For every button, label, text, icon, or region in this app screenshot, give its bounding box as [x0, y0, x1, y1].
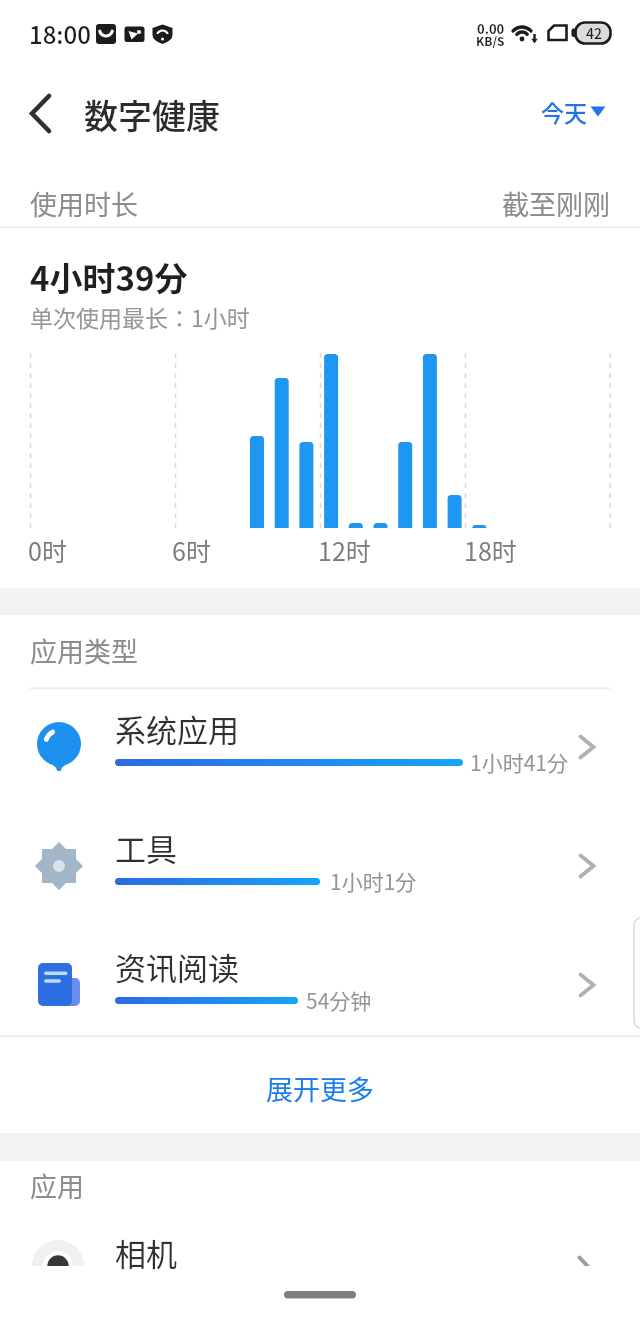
- staticText: 数字健康: [84, 90, 220, 139]
- button[interactable]: [520, 86, 620, 136]
- button[interactable]: [0, 807, 640, 926]
- staticText: 单次使用最长：1小时: [30, 300, 250, 333]
- staticText: 18时: [464, 532, 517, 568]
- staticText: 0.00: [477, 19, 505, 38]
- staticText: 截至刚刚: [502, 184, 610, 223]
- staticText: 1小时1分: [330, 866, 417, 896]
- staticText: KB/S: [476, 32, 505, 49]
- button[interactable]: [0, 1215, 640, 1323]
- staticText: 今天: [541, 95, 587, 128]
- staticText: 应用: [30, 1166, 84, 1205]
- staticText: 42: [586, 23, 602, 43]
- staticText: 使用时长: [30, 184, 138, 223]
- button[interactable]: [0, 1046, 640, 1132]
- staticText: 展开更多: [266, 1069, 374, 1108]
- staticText: 资讯阅读: [115, 944, 239, 989]
- staticText: 应用类型: [30, 631, 138, 670]
- staticText: 12时: [318, 532, 371, 568]
- staticText: 系统应用: [115, 706, 239, 751]
- button[interactable]: [0, 926, 640, 1045]
- staticText: 4小时39分: [30, 253, 188, 301]
- staticText: 54分钟: [306, 985, 372, 1015]
- staticText: 1小时41分: [470, 747, 568, 777]
- staticText: 0时: [28, 532, 67, 568]
- staticText: 18:00: [29, 16, 91, 51]
- button[interactable]: [16, 86, 68, 142]
- staticText: 相机: [115, 1230, 177, 1275]
- staticText: 6时: [172, 532, 211, 568]
- button[interactable]: [0, 688, 640, 807]
- staticText: 工具: [115, 825, 177, 870]
